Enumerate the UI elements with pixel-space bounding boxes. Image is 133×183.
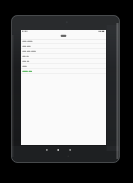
button[interactable] <box>21 44 106 49</box>
button[interactable] <box>21 69 106 74</box>
button[interactable] <box>21 49 106 54</box>
button[interactable] <box>21 64 106 69</box>
button[interactable] <box>21 59 106 64</box>
button[interactable] <box>21 33 106 39</box>
button[interactable] <box>21 54 106 59</box>
button[interactable] <box>21 39 106 44</box>
